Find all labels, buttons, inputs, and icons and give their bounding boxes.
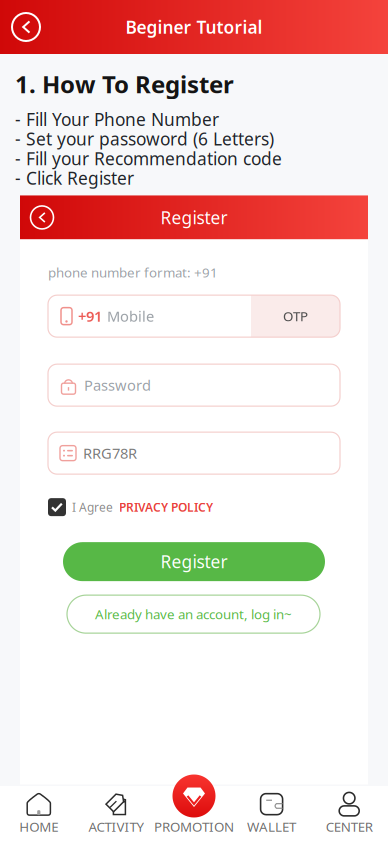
button[interactable]: Back	[0, 0, 52, 54]
staticText: - Fill Your Phone Number	[15, 108, 219, 131]
staticText: Register	[160, 206, 227, 229]
staticText: Mobile	[107, 306, 154, 326]
button[interactable]: CENTER	[310, 786, 388, 842]
staticText: WALLET	[247, 818, 296, 835]
staticText: Beginer Tutorial	[125, 15, 262, 38]
staticText: - Set your passoword (6 Letters)	[15, 127, 274, 150]
staticText: Register	[160, 550, 227, 573]
staticText: 1. How To Register	[15, 68, 234, 100]
staticText: I Agree	[72, 499, 113, 515]
staticText: CENTER	[326, 818, 373, 835]
button[interactable]: Promotion	[172, 774, 216, 818]
staticText: Already have an account, log in~	[95, 605, 292, 623]
button[interactable]: OTP	[251, 295, 340, 337]
button[interactable]: Back	[20, 195, 64, 239]
staticText: Password	[84, 375, 151, 395]
staticText: PRIVACY POLICY	[119, 499, 213, 515]
staticText: PROMOTION	[154, 818, 234, 835]
staticText: - Fill your Recommendation code	[15, 147, 282, 170]
staticText: phone number format: +91	[48, 263, 218, 281]
button[interactable]: PRIVACY POLICY	[119, 499, 213, 515]
staticText: RRG78R	[83, 443, 137, 463]
button[interactable]: I agree to the privacy policy	[48, 498, 66, 516]
button[interactable]: PROMOTION	[155, 786, 233, 842]
button[interactable]: Already have an account, log in~	[67, 595, 320, 633]
staticText: ACTIVITY	[88, 818, 144, 835]
staticText: HOME	[19, 818, 58, 835]
button[interactable]: ACTIVITY	[78, 786, 155, 842]
button[interactable]: WALLET	[233, 786, 310, 842]
button[interactable]: Register	[63, 542, 325, 581]
staticText: OTP	[283, 307, 308, 325]
staticText: +91	[78, 306, 102, 326]
staticText: - Click Register	[15, 166, 134, 189]
button[interactable]: HOME	[0, 786, 78, 842]
